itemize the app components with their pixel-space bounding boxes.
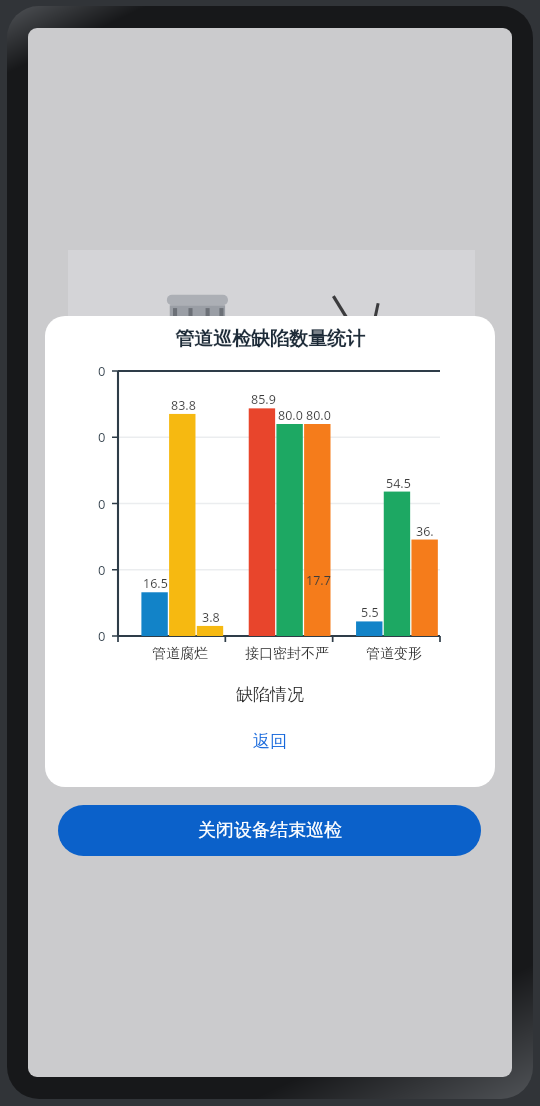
staticText: 0: [98, 627, 106, 645]
button[interactable]: 关闭设备结束巡检: [58, 805, 481, 856]
staticText: 3.8: [202, 609, 220, 626]
staticText: 80.0: [278, 407, 303, 424]
staticText: 关闭设备结束巡检: [198, 819, 342, 842]
staticText: 54.5: [386, 475, 411, 492]
staticText: 接口密封不严: [245, 645, 329, 663]
staticText: 管道腐烂: [152, 645, 208, 663]
staticText: 85.9: [251, 391, 276, 408]
staticText: 0: [98, 362, 106, 380]
staticText: 17.7: [306, 572, 331, 589]
staticText: 80.0: [306, 407, 331, 424]
button[interactable]: 返回: [45, 727, 495, 755]
staticText: 0: [98, 495, 106, 513]
staticText: 管道变形: [366, 645, 422, 663]
staticText: 36.: [416, 523, 434, 540]
staticText: 0: [98, 428, 106, 446]
staticText: 返回: [253, 731, 287, 752]
staticText: 缺陷情况: [236, 684, 304, 705]
staticText: 16.5: [143, 575, 168, 592]
staticText: 5.5: [361, 604, 379, 621]
staticText: 83.8: [171, 397, 196, 414]
staticText: 管道巡检缺陷数量统计: [175, 327, 365, 351]
staticText: 0: [98, 561, 106, 579]
